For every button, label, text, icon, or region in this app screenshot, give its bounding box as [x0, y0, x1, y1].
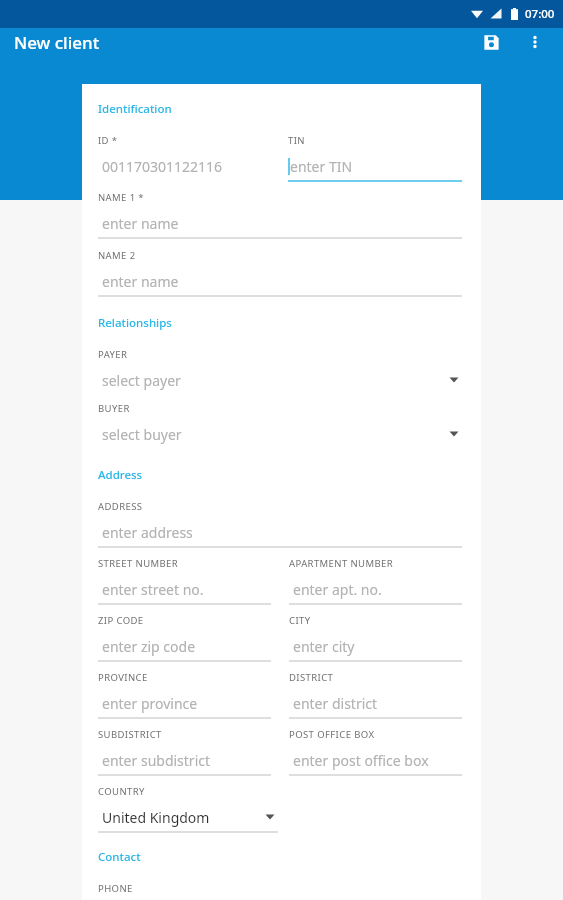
button[interactable]: NAME 2: [98, 249, 462, 297]
staticText: enter district: [293, 694, 378, 713]
staticText: 07:00: [525, 6, 555, 22]
staticText: APARTMENT NUMBER: [289, 557, 394, 570]
button[interactable]: NAME 1 *: [98, 191, 462, 239]
staticText: ADDRESS: [98, 500, 143, 513]
staticText: enter address: [102, 523, 193, 542]
staticText: enter name: [102, 272, 179, 291]
staticText: select payer: [102, 371, 448, 390]
staticText: 001170301122116: [102, 157, 223, 176]
button[interactable]: SUBDISTRICT: [98, 728, 271, 776]
button[interactable]: DISTRICT: [289, 671, 462, 719]
button[interactable]: ADDRESS: [98, 500, 462, 548]
staticText: enter TIN: [290, 157, 353, 176]
staticText: NAME 1 *: [98, 191, 144, 204]
staticText: NAME 2: [98, 249, 136, 262]
button[interactable]: More options: [513, 28, 557, 56]
staticText: DISTRICT: [289, 671, 334, 684]
staticText: United Kingdom: [102, 808, 264, 827]
staticText: ZIP CODE: [98, 614, 144, 627]
staticText: Relationships: [98, 315, 172, 331]
staticText: Address: [98, 467, 143, 483]
staticText: COUNTRY: [98, 785, 145, 798]
staticText: BUYER: [98, 402, 130, 415]
staticText: enter city: [293, 637, 355, 656]
button[interactable]: TIN: [288, 134, 462, 182]
button[interactable]: ZIP CODE: [98, 614, 271, 662]
button[interactable]: PROVINCE: [98, 671, 271, 719]
button[interactable]: CITY: [289, 614, 462, 662]
staticText: New client: [14, 31, 100, 54]
staticText: enter zip code: [102, 637, 196, 656]
button[interactable]: POST OFFICE BOX: [289, 728, 462, 776]
button[interactable]: ID *: [98, 134, 272, 182]
button[interactable]: STREET NUMBER: [98, 557, 271, 605]
staticText: ID *: [98, 134, 118, 147]
staticText: Contact: [98, 849, 141, 865]
staticText: Identification: [98, 101, 172, 117]
staticText: enter province: [102, 694, 198, 713]
staticText: SUBDISTRICT: [98, 728, 162, 741]
staticText: TIN: [288, 134, 305, 147]
button[interactable]: Save: [469, 28, 513, 56]
staticText: PAYER: [98, 348, 128, 361]
staticText: enter street no.: [102, 580, 204, 599]
staticText: POST OFFICE BOX: [289, 728, 375, 741]
staticText: PROVINCE: [98, 671, 148, 684]
staticText: select buyer: [102, 425, 448, 444]
button[interactable]: PAYER: [98, 348, 462, 396]
button[interactable]: COUNTRY: [98, 785, 278, 833]
staticText: STREET NUMBER: [98, 557, 179, 570]
staticText: enter apt. no.: [293, 580, 382, 599]
staticText: CITY: [289, 614, 311, 627]
staticText: enter post office box: [293, 751, 429, 770]
staticText: enter name: [102, 214, 179, 233]
staticText: enter subdistrict: [102, 751, 211, 770]
button[interactable]: APARTMENT NUMBER: [289, 557, 462, 605]
button[interactable]: BUYER: [98, 402, 462, 450]
button[interactable]: PHONE: [98, 882, 462, 900]
staticText: PHONE: [98, 882, 133, 895]
